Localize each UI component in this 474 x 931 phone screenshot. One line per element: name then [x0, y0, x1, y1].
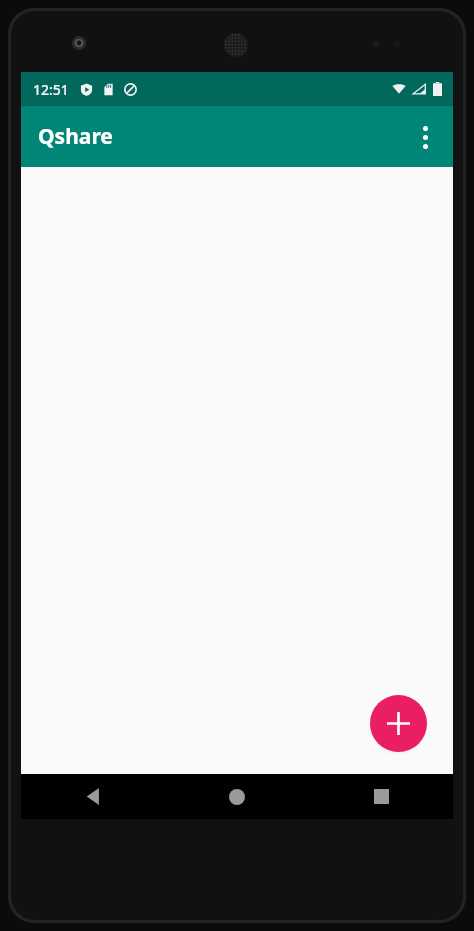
button[interactable]: More options [401, 113, 449, 161]
button[interactable]: Home [165, 774, 309, 819]
button[interactable]: Back [21, 774, 165, 819]
staticText: Qshare [38, 122, 113, 151]
button[interactable]: Add [370, 695, 427, 752]
button[interactable]: Recent apps [309, 774, 453, 819]
staticText: 12:51 [33, 80, 69, 99]
